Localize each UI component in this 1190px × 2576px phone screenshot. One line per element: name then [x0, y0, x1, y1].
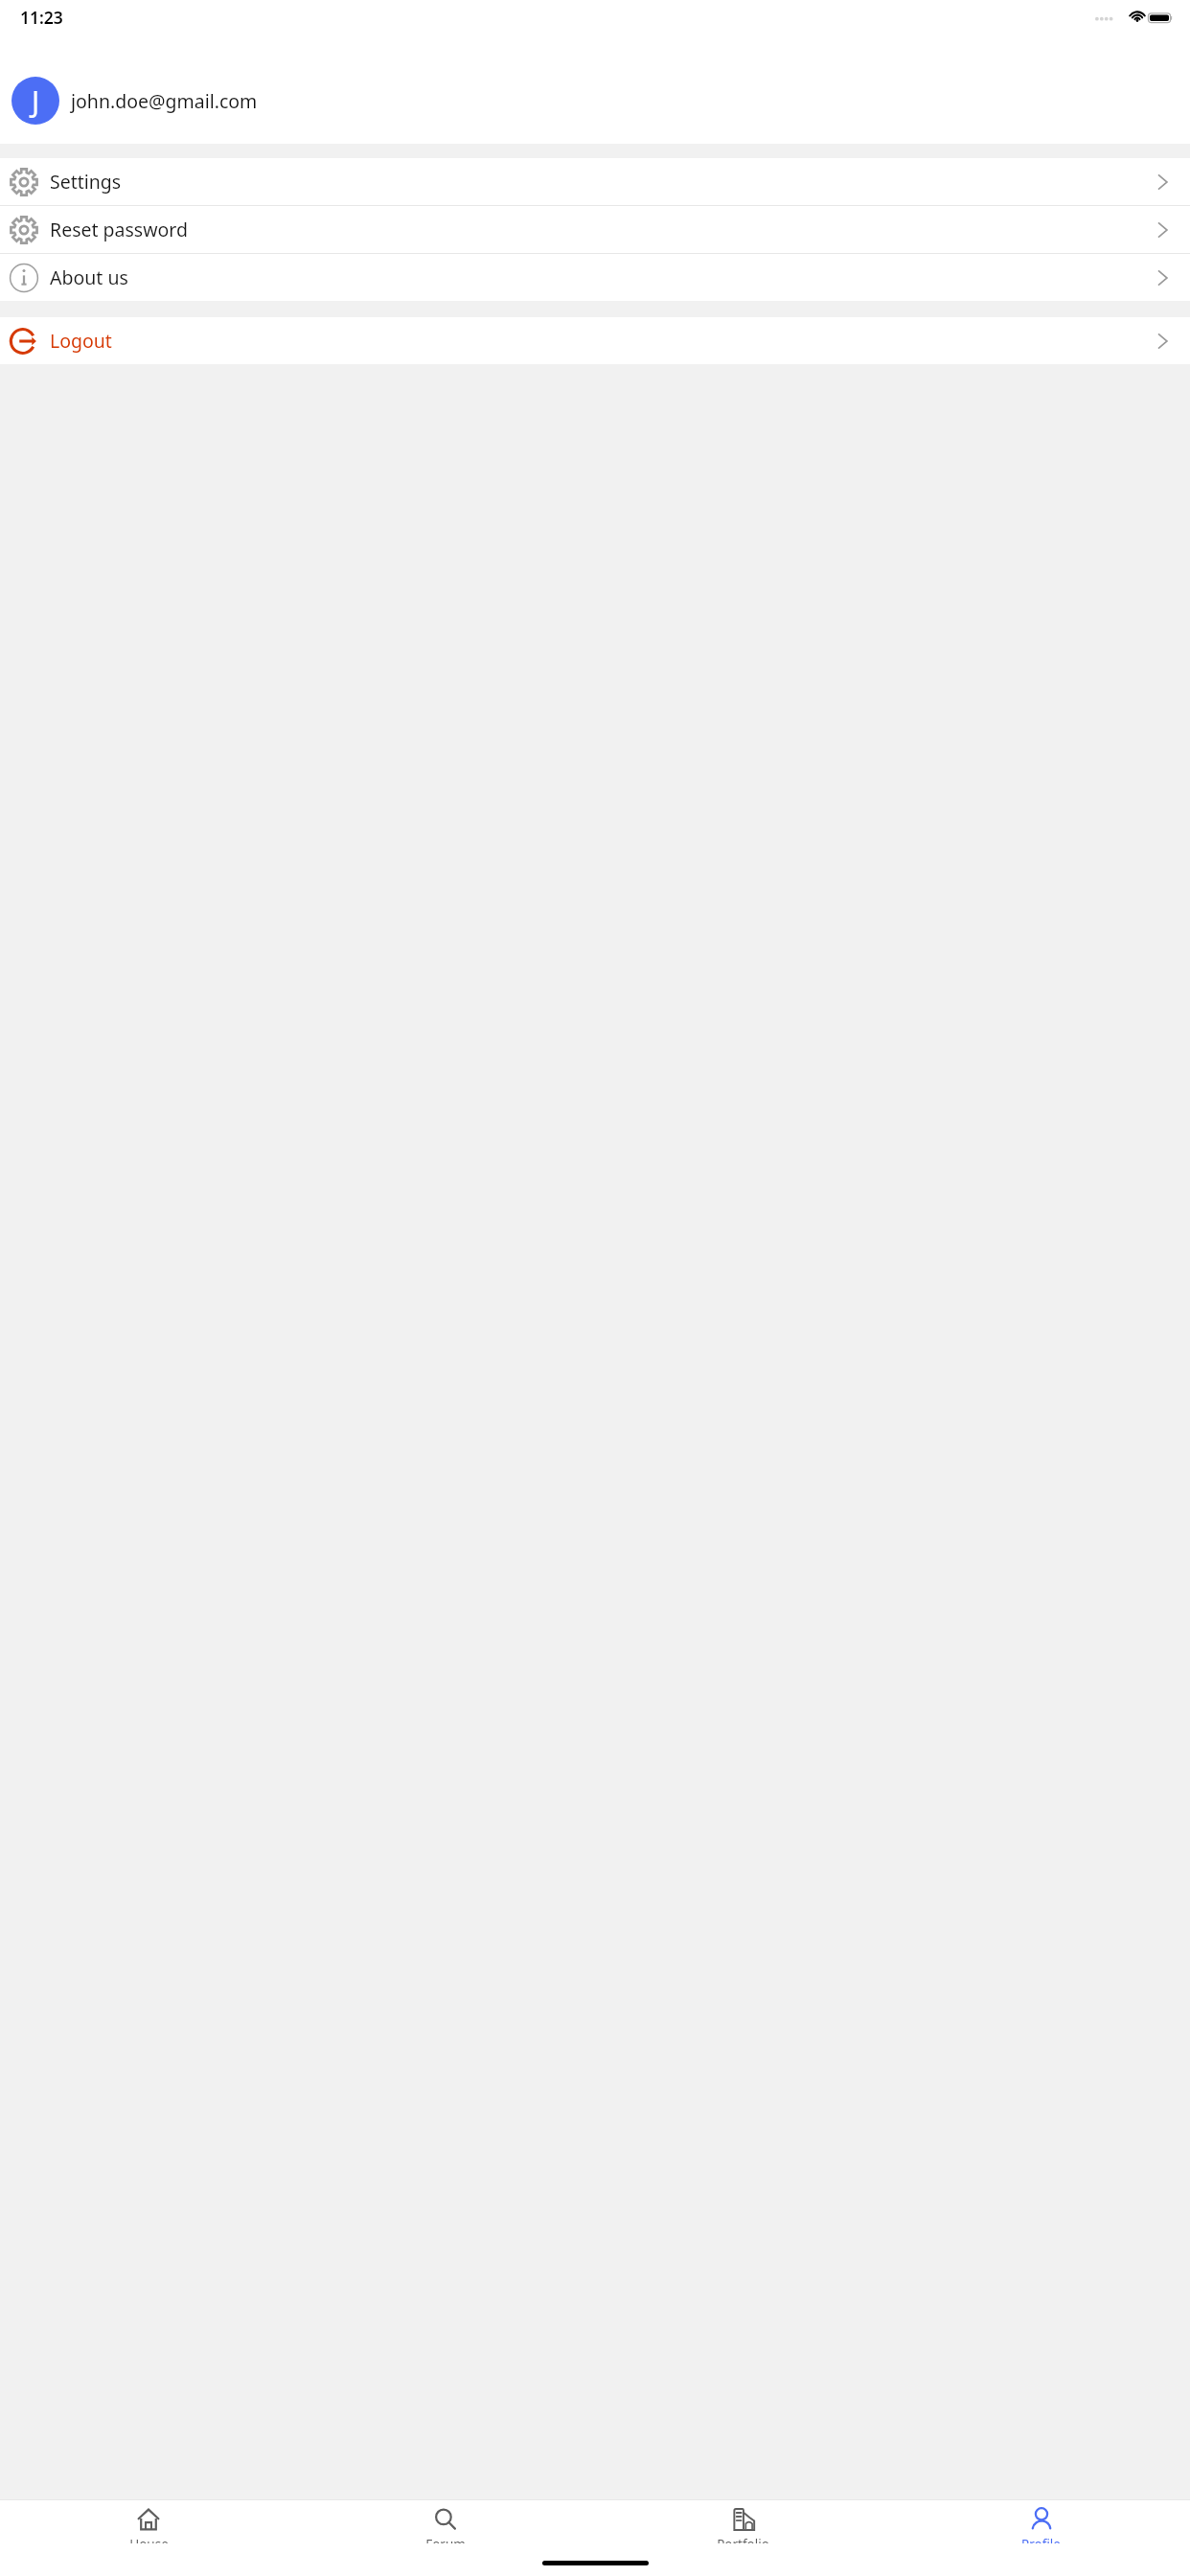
button[interactable]: Forum — [297, 2500, 594, 2543]
staticText: Profile — [1021, 2536, 1061, 2543]
button[interactable]: Reset password — [0, 206, 1190, 253]
staticText: john.doe@gmail.com — [71, 88, 258, 114]
staticText: J — [32, 81, 40, 121]
button[interactable]: Portfolio — [594, 2500, 892, 2543]
staticText: Logout — [50, 328, 112, 354]
button[interactable]: Logout — [0, 317, 1190, 364]
staticText: House — [129, 2536, 169, 2543]
button[interactable]: About us — [0, 254, 1190, 301]
staticText: About us — [50, 264, 128, 290]
staticText: Reset password — [50, 217, 188, 242]
button[interactable]: Settings — [0, 158, 1190, 205]
button[interactable]: Profile — [892, 2500, 1190, 2543]
button[interactable]: House — [0, 2500, 297, 2543]
staticText: Forum — [425, 2536, 466, 2543]
staticText: Portfolio — [717, 2536, 769, 2543]
staticText: Settings — [50, 169, 122, 195]
staticText: 11:23 — [20, 6, 63, 29]
